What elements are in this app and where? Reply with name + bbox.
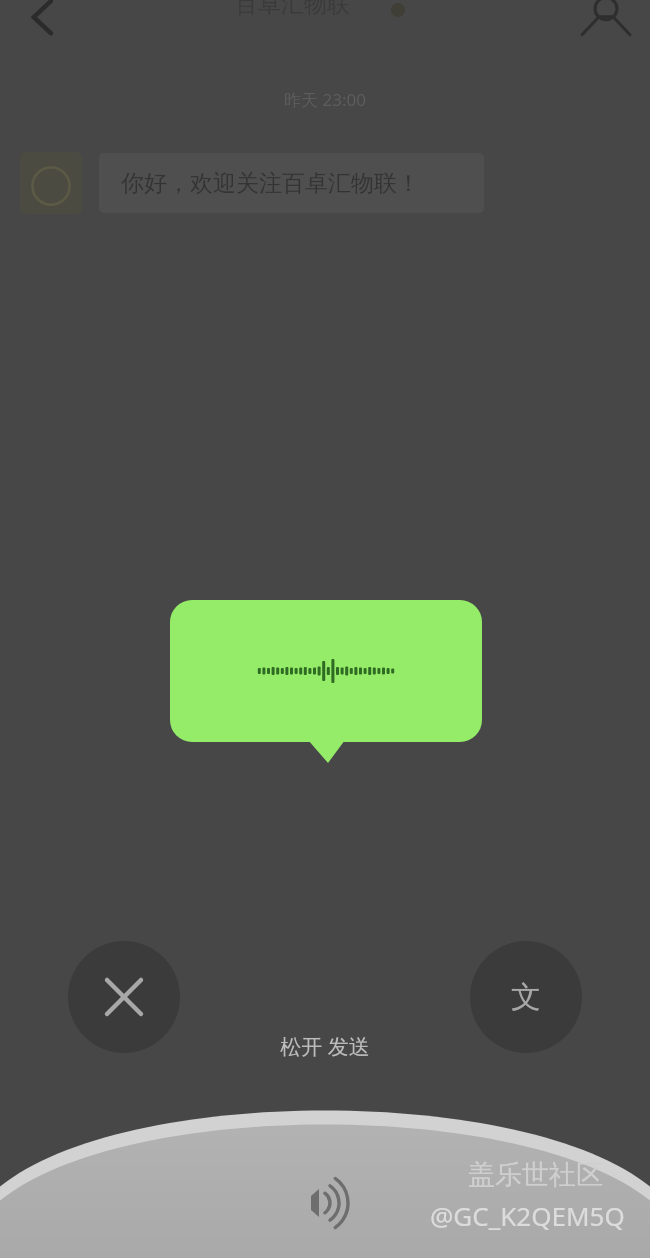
staticText: 你好，欢迎关注百卓汇物联！ (121, 169, 420, 198)
button[interactable]: Convert to text (470, 941, 582, 1053)
staticText: @GC_K2QEM5Q (430, 1198, 625, 1233)
button[interactable]: Cancel recording (68, 941, 180, 1053)
button[interactable]: Back (10, 0, 70, 46)
staticText: 盖乐世社区 (468, 1158, 603, 1192)
staticText: 文 (511, 978, 541, 1016)
button[interactable]: 你好，欢迎关注百卓汇物联！ (99, 153, 484, 213)
staticText: 松开 发送 (0, 1032, 650, 1258)
staticText: 昨天 23:00 (0, 88, 650, 1258)
button[interactable]: Contact info (578, 0, 634, 40)
staticText: 百卓汇物联 (235, 0, 350, 19)
